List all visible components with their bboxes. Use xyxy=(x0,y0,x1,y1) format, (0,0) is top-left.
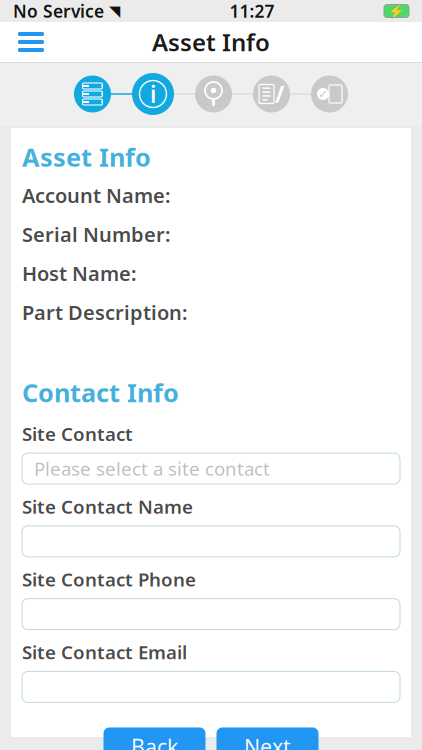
button[interactable]: Back xyxy=(103,727,205,750)
staticText: ⚡ xyxy=(388,3,405,19)
staticText: 11:27 xyxy=(229,0,274,22)
staticText: Asset Info xyxy=(22,140,151,174)
button[interactable] xyxy=(22,671,400,702)
staticText: Contact Info xyxy=(22,376,179,409)
button[interactable]: Next xyxy=(216,727,318,750)
staticText: Account Name: xyxy=(22,182,171,208)
staticText: Asset Info xyxy=(152,26,270,58)
button[interactable] xyxy=(22,526,400,557)
staticText: Site Contact xyxy=(22,421,133,446)
button[interactable]: Menu xyxy=(8,23,54,61)
staticText: Next xyxy=(244,732,291,750)
staticText: Host Name: xyxy=(22,260,137,286)
staticText: i xyxy=(150,79,156,109)
staticText: Site Contact Email xyxy=(22,640,187,664)
staticText: Part Description: xyxy=(22,299,188,325)
button[interactable]: Please select a site contact xyxy=(22,453,400,484)
staticText: ✓ xyxy=(318,87,328,101)
staticText: Back xyxy=(131,732,178,750)
staticText: / xyxy=(275,79,284,109)
staticText: ◥ xyxy=(109,3,120,19)
staticText: Site Contact Name xyxy=(22,494,193,519)
staticText: Site Contact Phone xyxy=(22,567,196,592)
button[interactable] xyxy=(22,599,400,630)
staticText: Serial Number: xyxy=(22,221,171,247)
staticText: Please select a site contact xyxy=(34,456,270,481)
staticText: No Service xyxy=(13,0,104,22)
